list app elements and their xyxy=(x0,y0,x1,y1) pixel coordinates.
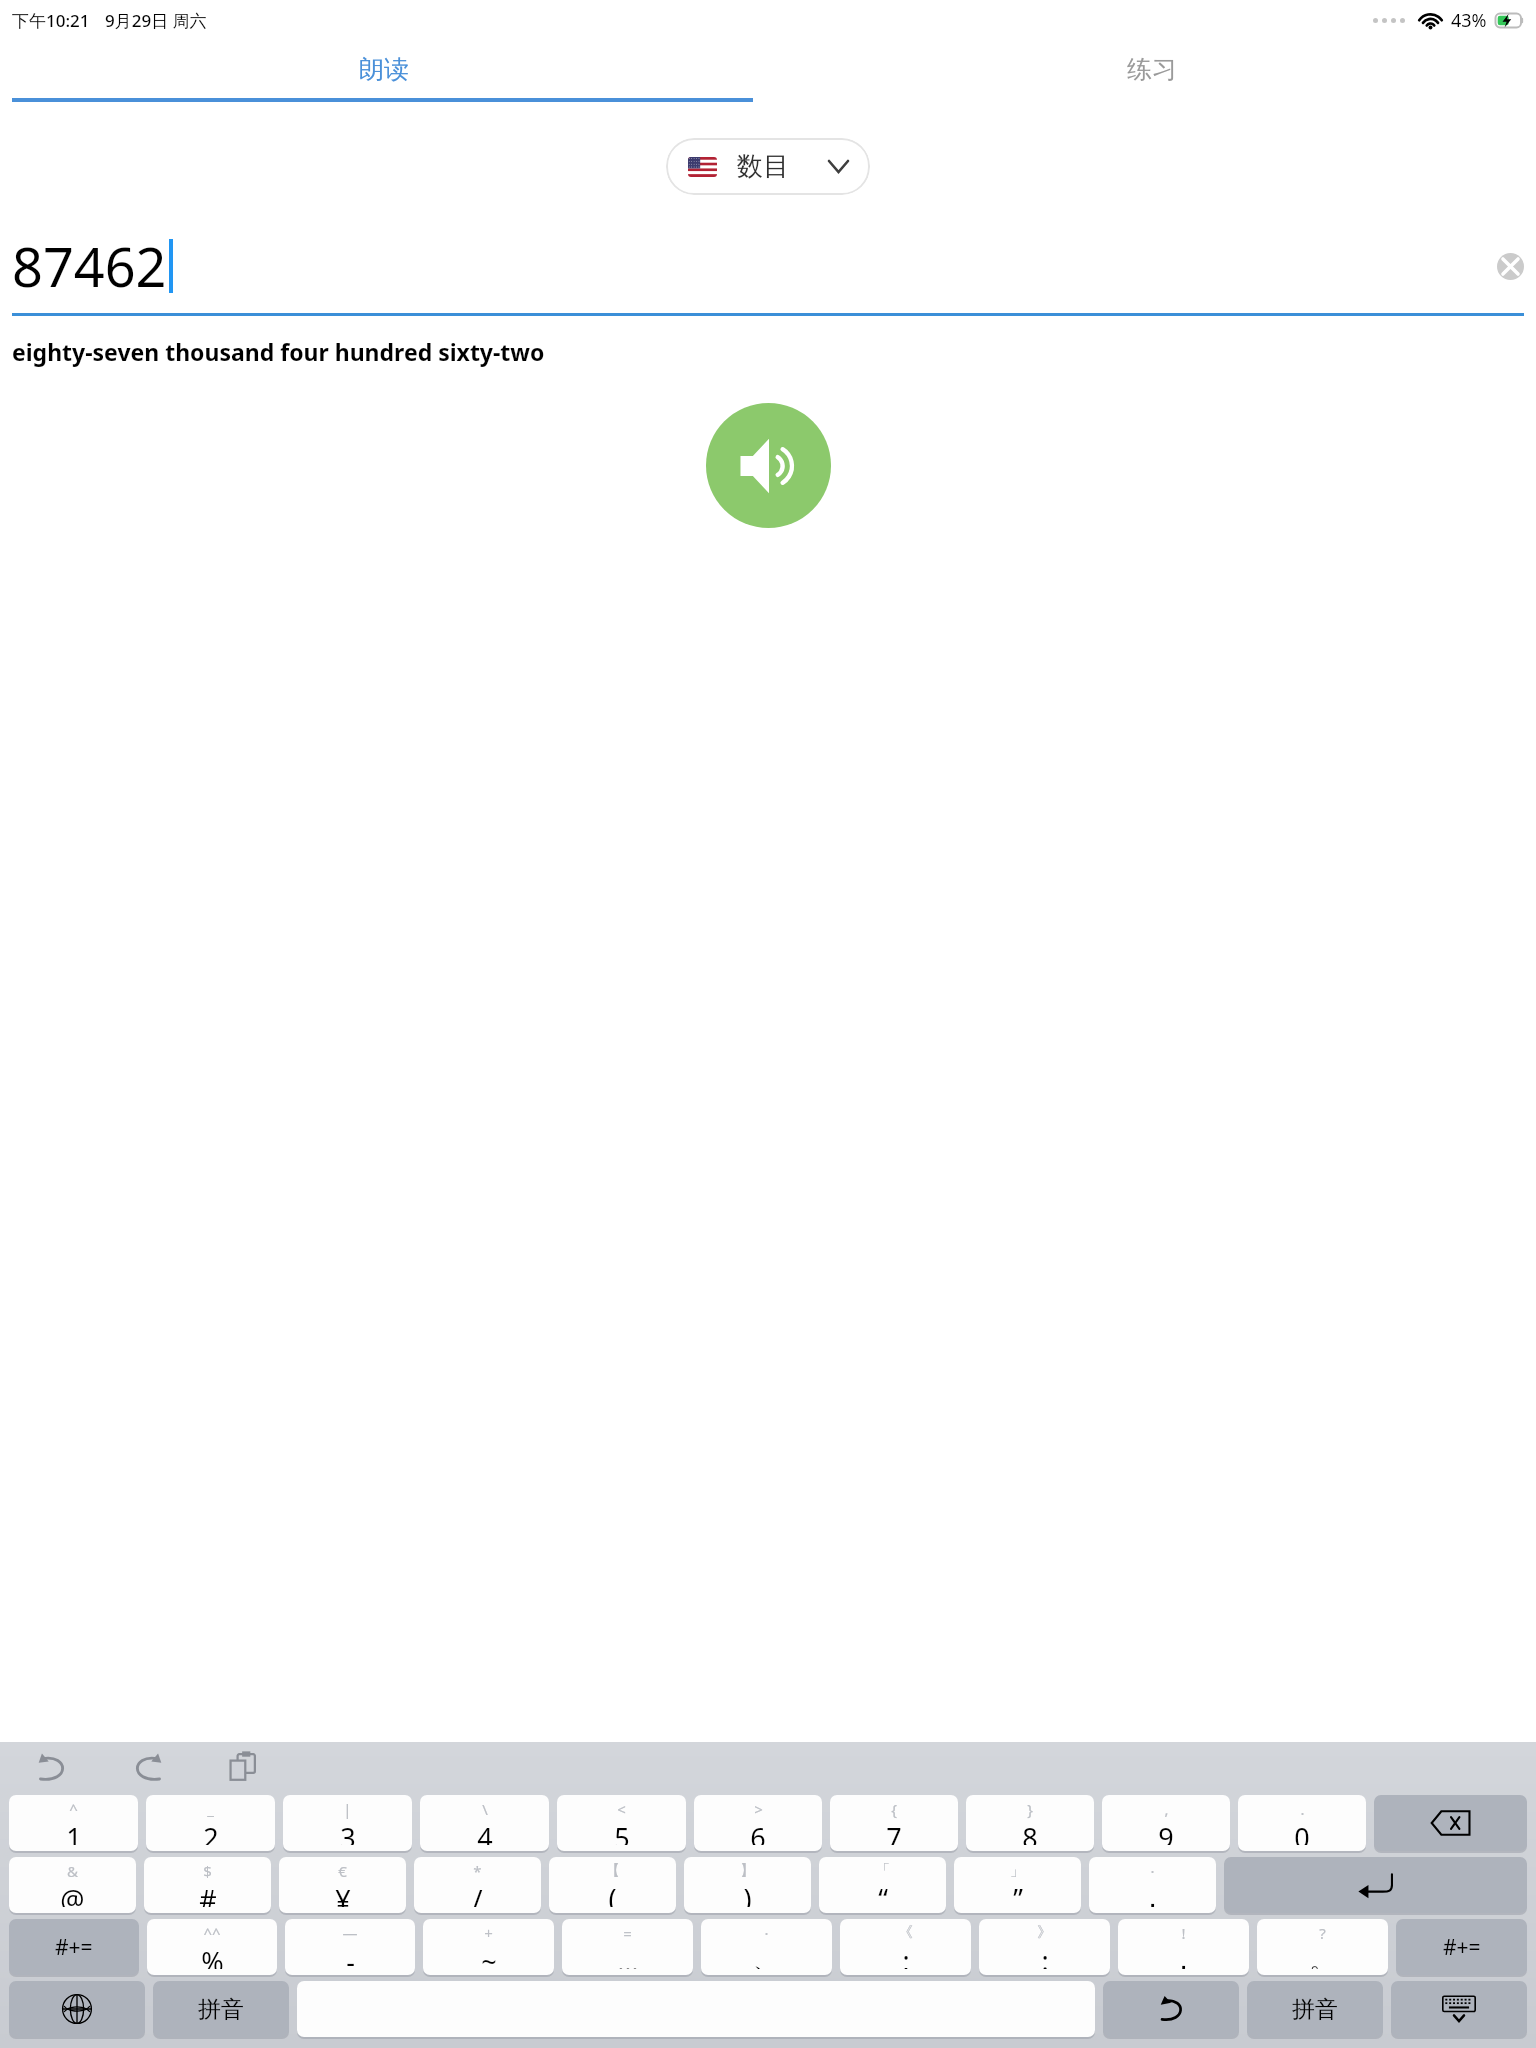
button[interactable]: , xyxy=(1102,1795,1230,1851)
staticText: 4 xyxy=(477,1819,493,1845)
staticText: 0 xyxy=(1294,1819,1310,1845)
staticText: 」 xyxy=(1010,1861,1025,1880)
staticText: / xyxy=(472,1881,483,1907)
staticText: 87462 xyxy=(12,229,167,303)
button[interactable]: < xyxy=(557,1795,686,1851)
staticText: , xyxy=(1164,1799,1169,1819)
staticText: ^ xyxy=(69,1799,78,1819)
button[interactable]: 》 xyxy=(979,1919,1110,1975)
staticText: > xyxy=(754,1799,763,1819)
button[interactable]: } xyxy=(966,1795,1094,1851)
staticText: — xyxy=(342,1923,358,1943)
staticText: 7 xyxy=(886,1819,902,1845)
staticText: ! xyxy=(1181,1923,1186,1943)
button[interactable]: 拼音 xyxy=(1247,1981,1383,2037)
staticText: @ xyxy=(60,1881,85,1907)
staticText: € xyxy=(338,1861,347,1881)
button[interactable]: & xyxy=(9,1857,136,1913)
button[interactable]: * xyxy=(414,1857,541,1913)
staticText: - xyxy=(346,1943,355,1969)
staticText: ^^ xyxy=(203,1923,221,1943)
button[interactable]: Paste xyxy=(220,1743,268,1791)
staticText: 3 xyxy=(340,1819,356,1845)
staticText: ; xyxy=(902,1942,910,1969)
staticText: & xyxy=(67,1861,78,1881)
button[interactable]: Redo xyxy=(124,1743,172,1791)
staticText: _ xyxy=(207,1799,214,1819)
staticText: * xyxy=(473,1861,482,1881)
button[interactable]: ? xyxy=(1257,1919,1388,1975)
button[interactable]: { xyxy=(830,1795,958,1851)
staticText: 9 xyxy=(1158,1819,1174,1845)
button[interactable]: Hide keyboard xyxy=(1391,1981,1527,2037)
button[interactable]: 】 xyxy=(684,1857,811,1913)
button[interactable]: Undo xyxy=(28,1743,76,1791)
button[interactable]: — xyxy=(285,1919,415,1975)
button[interactable]: 拼音 xyxy=(153,1981,289,2037)
staticText: ( xyxy=(608,1880,617,1907)
staticText: . xyxy=(1300,1799,1305,1819)
staticText: ¥ xyxy=(335,1881,351,1907)
button[interactable]: 「 xyxy=(819,1857,946,1913)
button[interactable]: Clear text xyxy=(1497,253,1524,280)
staticText: # xyxy=(199,1881,217,1907)
button[interactable]: ! xyxy=(1118,1919,1249,1975)
button[interactable]: Play pronunciation xyxy=(706,403,831,528)
button[interactable]: Return xyxy=(1224,1857,1527,1913)
button[interactable]: + xyxy=(423,1919,554,1975)
button[interactable]: · xyxy=(1089,1857,1216,1913)
staticText: 拼音 xyxy=(1292,1995,1338,2024)
button[interactable]: #+= xyxy=(1396,1919,1527,1975)
button[interactable]: Switch keyboard xyxy=(9,1981,145,2037)
button[interactable]: \ xyxy=(420,1795,549,1851)
button[interactable]: Undo xyxy=(1103,1981,1239,2037)
button[interactable]: 《 xyxy=(840,1919,971,1975)
staticText: + xyxy=(484,1923,493,1943)
staticText: ” xyxy=(1013,1880,1023,1907)
button[interactable]: $ xyxy=(144,1857,271,1913)
button[interactable]: Backspace xyxy=(1374,1795,1527,1851)
staticText: ) xyxy=(743,1880,752,1907)
staticText: 8 xyxy=(1022,1819,1038,1845)
button[interactable]: 朗读 xyxy=(0,40,768,98)
button[interactable]: 87462 xyxy=(12,219,1524,313)
staticText: 2 xyxy=(203,1819,219,1845)
button[interactable]: _ xyxy=(146,1795,275,1851)
staticText: ? xyxy=(1319,1923,1326,1943)
staticText: 下午10:21 xyxy=(12,9,90,32)
button[interactable]: #+= xyxy=(9,1919,139,1975)
button[interactable]: ^^ xyxy=(147,1919,277,1975)
button[interactable]: 」 xyxy=(954,1857,1081,1913)
staticText: 》 xyxy=(1037,1923,1052,1942)
button[interactable]: 【 xyxy=(549,1857,676,1913)
staticText: 【 xyxy=(605,1861,620,1880)
staticText: ， xyxy=(1139,1881,1166,1907)
staticText: 数目 xyxy=(737,150,789,183)
staticText: 练习 xyxy=(1127,54,1177,85)
button[interactable]: 练习 xyxy=(768,40,1536,98)
staticText: = xyxy=(623,1923,632,1943)
staticText: % xyxy=(201,1943,224,1969)
button[interactable]: ^ xyxy=(9,1795,138,1851)
staticText: #+= xyxy=(1443,1933,1481,1962)
staticText: 6 xyxy=(750,1819,766,1845)
staticText: 朗读 xyxy=(359,54,409,85)
button[interactable]: 数目 xyxy=(666,138,870,195)
button[interactable]: · xyxy=(701,1919,832,1975)
staticText: · xyxy=(764,1923,769,1943)
staticText: { xyxy=(891,1799,897,1819)
button[interactable]: € xyxy=(279,1857,406,1913)
staticText: 、 xyxy=(753,1943,780,1969)
staticText: · xyxy=(1150,1861,1155,1881)
button[interactable]: . xyxy=(1238,1795,1366,1851)
button[interactable]: > xyxy=(694,1795,822,1851)
staticText: : xyxy=(1041,1942,1049,1969)
button[interactable]: | xyxy=(283,1795,412,1851)
button[interactable]: = xyxy=(562,1919,693,1975)
staticText: 43% xyxy=(1451,8,1487,33)
staticText: eighty-seven thousand four hundred sixty… xyxy=(12,336,545,367)
staticText: $ xyxy=(203,1861,212,1881)
staticText: 】 xyxy=(740,1861,755,1880)
staticText: ， xyxy=(1170,1943,1197,1969)
